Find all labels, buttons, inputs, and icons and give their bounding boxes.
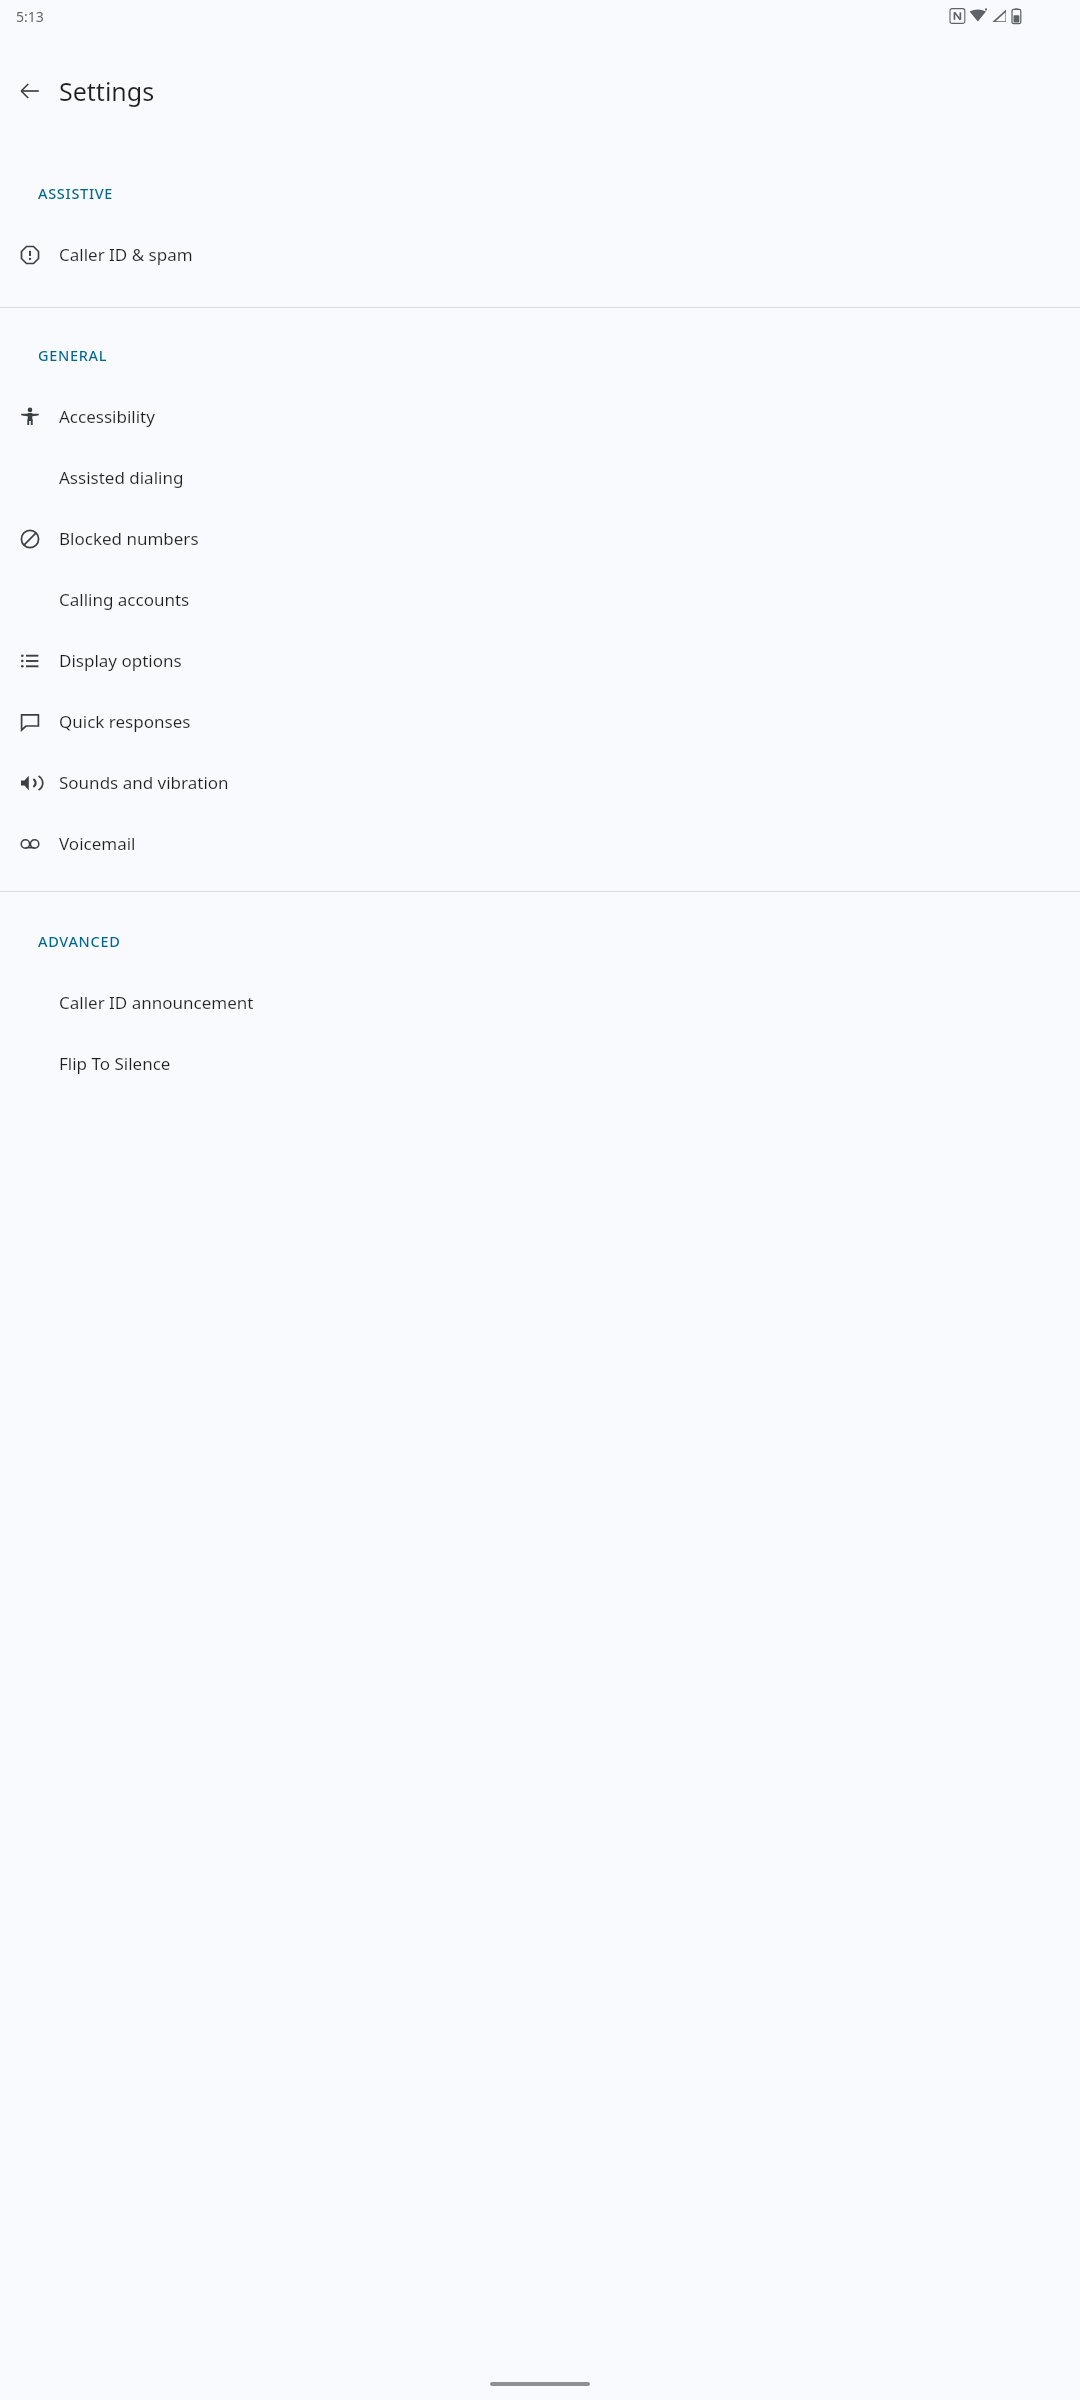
- button[interactable]: Sounds and vibration: [0, 752, 1080, 813]
- button[interactable]: Flip To Silence: [0, 1033, 1080, 1094]
- button[interactable]: Blocked numbers: [0, 508, 1080, 569]
- staticText: Caller ID & spam: [59, 243, 193, 266]
- staticText: Blocked numbers: [59, 527, 199, 550]
- button[interactable]: Accessibility: [0, 386, 1080, 447]
- button[interactable]: Assisted dialing: [0, 447, 1080, 508]
- staticText: ADVANCED: [38, 931, 121, 951]
- staticText: Caller ID announcement: [59, 991, 254, 1014]
- button[interactable]: Quick responses: [0, 691, 1080, 752]
- button[interactable]: Back: [0, 62, 59, 120]
- staticText: Accessibility: [59, 405, 155, 428]
- staticText: 5:13: [16, 7, 44, 26]
- staticText: Settings: [59, 74, 155, 108]
- staticText: Assisted dialing: [59, 466, 184, 489]
- staticText: Display options: [59, 649, 182, 672]
- staticText: ASSISTIVE: [38, 183, 114, 203]
- button[interactable]: Caller ID & spam: [0, 224, 1080, 285]
- button[interactable]: Caller ID announcement: [0, 972, 1080, 1033]
- staticText: Voicemail: [59, 832, 136, 855]
- staticText: Flip To Silence: [59, 1052, 171, 1075]
- button[interactable]: Calling accounts: [0, 569, 1080, 630]
- staticText: Calling accounts: [59, 588, 190, 611]
- staticText: Sounds and vibration: [59, 771, 229, 794]
- staticText: Quick responses: [59, 710, 191, 733]
- staticText: GENERAL: [38, 345, 108, 365]
- button[interactable]: Display options: [0, 630, 1080, 691]
- button[interactable]: Voicemail: [0, 813, 1080, 874]
